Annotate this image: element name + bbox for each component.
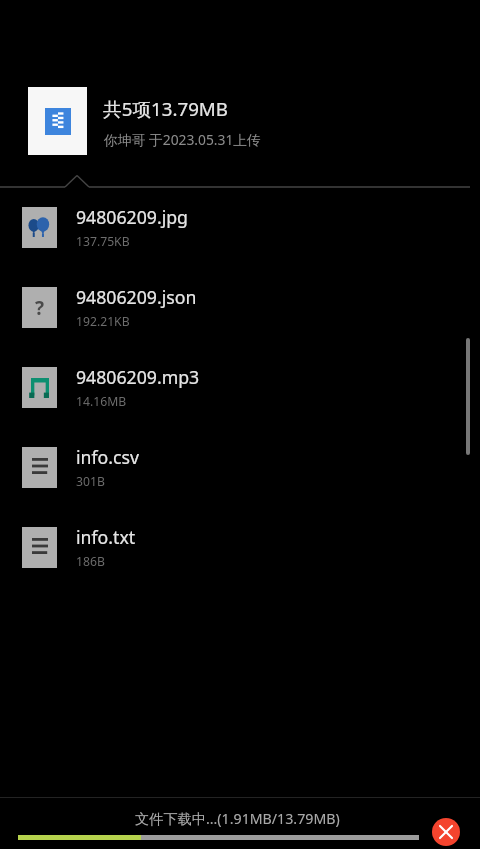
button[interactable]: 共5项13.79MB	[0, 78, 480, 166]
staticText: 94806209.mp3	[76, 365, 200, 389]
staticText: info.csv	[76, 445, 139, 469]
staticText: 14.16MB	[76, 393, 127, 410]
staticText: 94806209.json	[76, 285, 197, 309]
button[interactable]: 94806209.jpg	[0, 187, 480, 267]
staticText: 301B	[76, 473, 105, 490]
staticText: 共5项13.79MB	[103, 96, 228, 122]
staticText: 137.75KB	[76, 233, 130, 250]
button[interactable]: info.txt	[0, 507, 480, 587]
staticText: ?	[35, 295, 45, 321]
button[interactable]: ?	[0, 267, 480, 347]
button[interactable]: Cancel download	[432, 818, 460, 846]
button[interactable]: 94806209.mp3	[0, 347, 480, 427]
staticText: info.txt	[76, 525, 136, 549]
button[interactable]: info.csv	[0, 427, 480, 507]
staticText: 192.21KB	[76, 313, 130, 330]
staticText: 你坤哥 于2023.05.31上传	[104, 130, 261, 149]
staticText: 94806209.jpg	[76, 205, 188, 229]
staticText: 文件下载中...(1.91MB/13.79MB)	[135, 809, 340, 828]
staticText: 186B	[76, 553, 105, 570]
